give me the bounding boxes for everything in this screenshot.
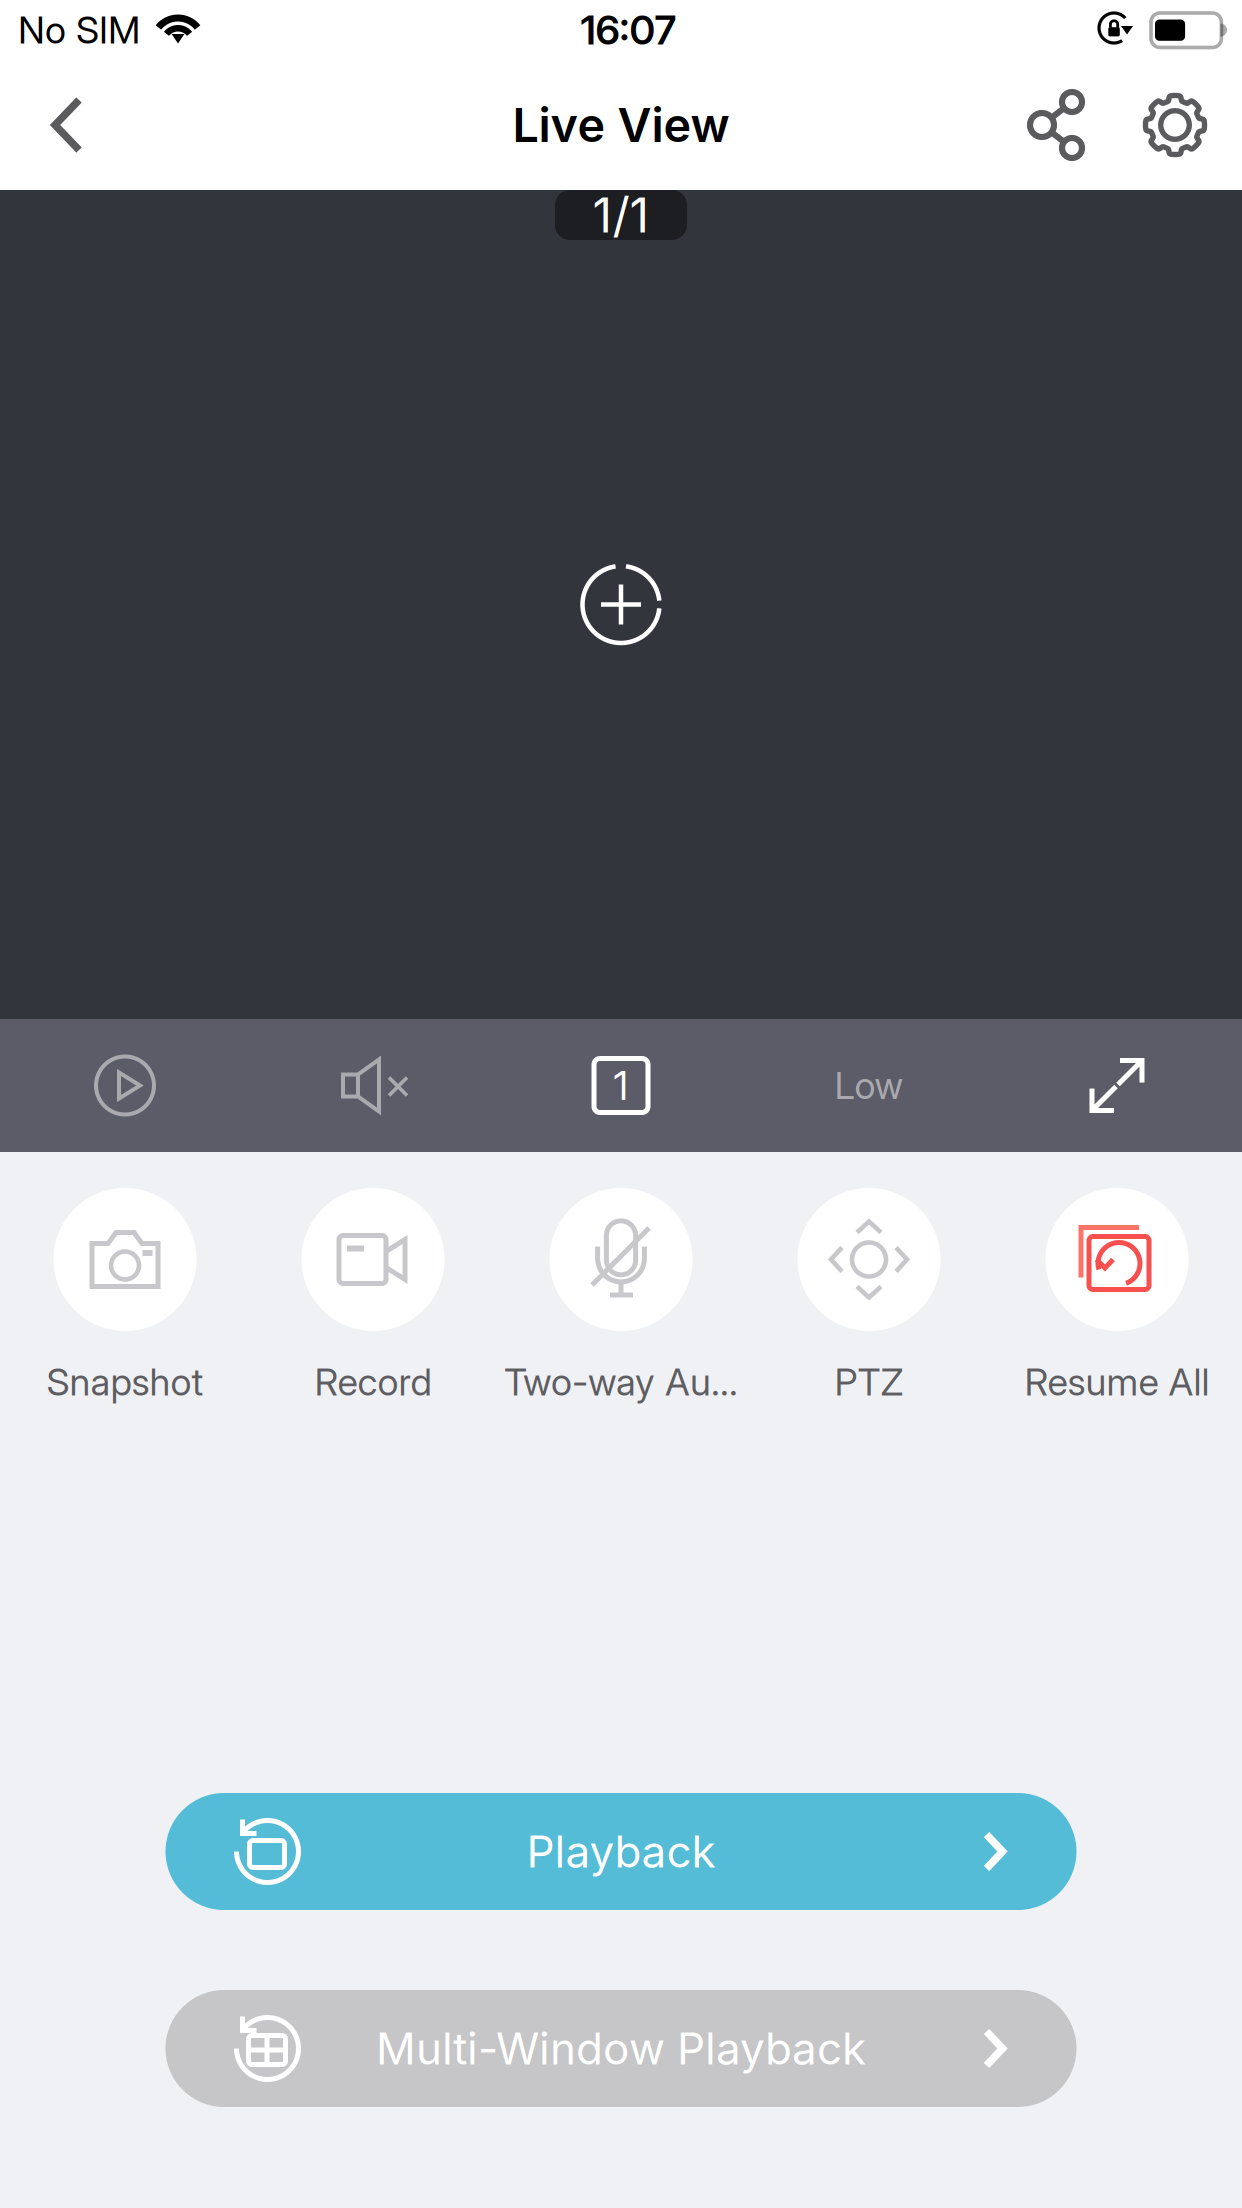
button[interactable]: Play — [1, 1019, 249, 1152]
staticText: Snapshot — [46, 1359, 203, 1405]
button[interactable]: Full screen — [993, 1019, 1241, 1152]
button[interactable]: Playback — [165, 1793, 1076, 1910]
button[interactable]: Snapshot — [1, 1188, 249, 1399]
staticText: 1/1 — [592, 186, 649, 244]
button[interactable]: Record — [249, 1188, 497, 1399]
staticText: 1 — [613, 1061, 628, 1110]
button[interactable]: Unmute — [249, 1019, 497, 1152]
staticText: Live View — [512, 97, 729, 153]
button[interactable]: Resume All — [993, 1188, 1241, 1399]
button[interactable]: Share — [1002, 65, 1112, 185]
button[interactable]: Low — [745, 1019, 993, 1152]
button[interactable]: PTZ — [745, 1188, 993, 1399]
button[interactable]: Two-way Au... — [497, 1188, 745, 1399]
button[interactable]: Settings — [1120, 65, 1230, 185]
button[interactable]: Window layout — [497, 1019, 745, 1152]
button[interactable]: Back — [17, 65, 117, 185]
staticText: Two-way Au... — [504, 1359, 738, 1405]
staticText: PTZ — [834, 1359, 903, 1405]
button[interactable]: Add camera — [556, 539, 686, 669]
staticText: Multi-Window Playback — [376, 2022, 866, 2075]
staticText: Low — [834, 1063, 903, 1108]
button[interactable]: Multi-Window Playback — [165, 1990, 1076, 2107]
staticText: Record — [314, 1359, 431, 1405]
staticText: 16:07 — [580, 6, 676, 54]
staticText: Playback — [526, 1825, 715, 1878]
staticText: Resume All — [1024, 1359, 1209, 1405]
staticText: No SIM — [18, 7, 140, 53]
